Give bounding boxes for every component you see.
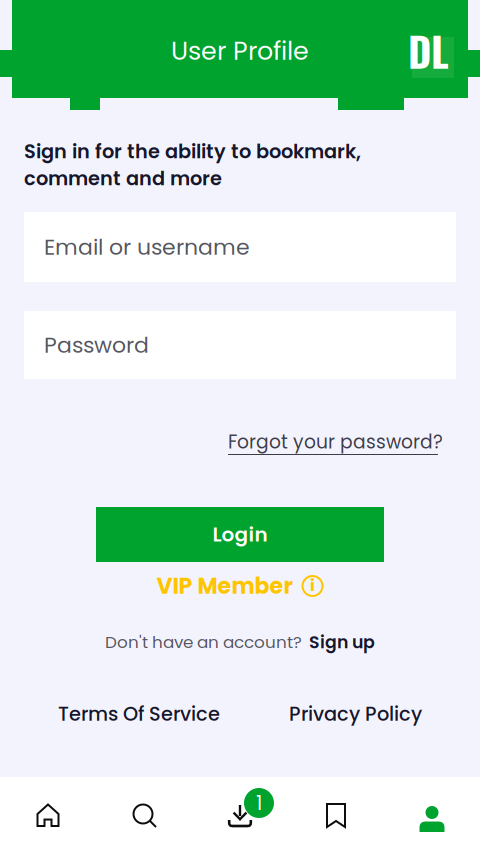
staticText: Privacy Policy — [289, 700, 422, 728]
staticText: VIP Member — [156, 571, 292, 601]
staticText: Don't have an account? — [105, 630, 302, 654]
staticText: Login — [212, 520, 267, 548]
staticText: Password — [44, 330, 149, 360]
staticText: DL — [408, 21, 449, 80]
staticText: Terms Of Service — [58, 700, 220, 728]
staticText: Email or username — [44, 232, 250, 262]
button[interactable]: Downloads — [192, 777, 288, 853]
button[interactable]: Search — [96, 777, 192, 853]
staticText: Forgot your password? — [228, 429, 443, 455]
button[interactable]: Profile — [384, 777, 480, 853]
staticText: 1 — [256, 789, 262, 817]
button[interactable]: Privacy Policy — [289, 701, 422, 727]
button[interactable]: Login — [96, 507, 384, 562]
button[interactable]: Terms Of Service — [58, 701, 223, 727]
button[interactable]: Email or username — [24, 212, 456, 282]
button[interactable]: Forgot your password? — [228, 430, 443, 455]
button[interactable]: Sign up — [309, 630, 375, 654]
button[interactable]: DL — [404, 27, 462, 85]
staticText: Sign up — [309, 630, 375, 654]
button[interactable]: Password — [24, 311, 456, 379]
button[interactable]: VIP Member — [156, 571, 323, 601]
button[interactable]: Bookmarks — [288, 777, 384, 853]
staticText: i — [310, 574, 315, 597]
staticText: User Profile — [171, 33, 309, 69]
button[interactable]: Home — [0, 777, 96, 853]
staticText: Sign in for the ability to bookmark, com… — [24, 138, 361, 192]
